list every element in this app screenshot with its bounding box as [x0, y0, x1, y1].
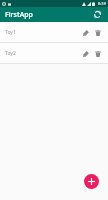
staticText: 8:39: [98, 1, 106, 6]
staticText: Toy1: [5, 29, 80, 36]
staticText: Toy2: [5, 50, 80, 57]
button[interactable]: Edit: [80, 48, 91, 59]
button[interactable]: Toy2: [0, 43, 108, 63]
button[interactable]: Refresh: [92, 9, 103, 20]
button[interactable]: Toy1: [0, 22, 108, 42]
button[interactable]: Edit: [80, 27, 91, 38]
button[interactable]: Delete: [92, 27, 103, 38]
button[interactable]: Add: [84, 174, 99, 189]
staticText: FirstApp: [5, 10, 33, 20]
button[interactable]: Delete: [92, 48, 103, 59]
